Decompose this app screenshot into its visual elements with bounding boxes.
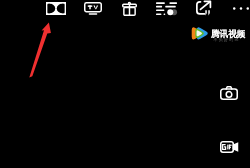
button[interactable]: More [231, 0, 250, 16]
button[interactable]: Share [191, 0, 216, 17]
button[interactable]: TV [80, 0, 106, 17]
button[interactable]: Record GIF [214, 136, 244, 158]
staticText: 不负好时光 [213, 37, 239, 42]
button[interactable]: Gift [118, 0, 141, 17]
staticText: 腾讯视频 [211, 29, 245, 40]
button[interactable]: Danmaku settings [152, 0, 180, 17]
button[interactable]: Dolby [42, 0, 70, 17]
button[interactable]: Screenshot [214, 82, 244, 104]
